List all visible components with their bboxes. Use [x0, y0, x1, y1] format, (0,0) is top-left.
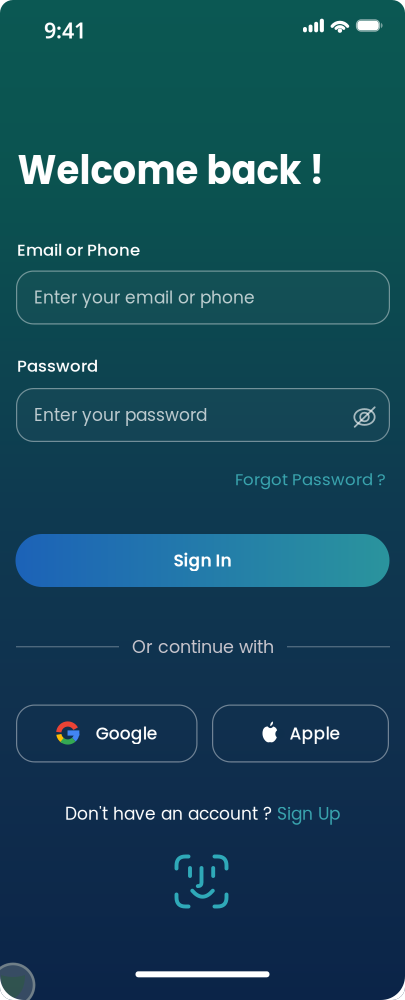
button[interactable]: Show password [352, 404, 376, 428]
button[interactable]: Sign Up [277, 802, 340, 826]
staticText: Or continue with [132, 634, 274, 659]
button[interactable]: Forgot Password ? [235, 468, 386, 491]
staticText: Email or Phone [17, 238, 140, 262]
button[interactable]: Apple [212, 704, 389, 762]
staticText: Sign In [173, 549, 231, 572]
button[interactable]: Sign In [15, 534, 389, 587]
button[interactable]: Enter your password [16, 388, 390, 442]
button[interactable]: Sign in with Face ID [174, 854, 228, 908]
staticText: Sign Up [277, 802, 340, 826]
staticText: Enter your email or phone [34, 286, 255, 309]
staticText: Google [96, 722, 157, 745]
staticText: Apple [289, 722, 339, 745]
staticText: 9:41 [44, 15, 86, 45]
button[interactable]: Enter your email or phone [16, 270, 390, 324]
staticText: Don't have an account ? [65, 802, 277, 826]
button[interactable]: Google [16, 704, 197, 762]
staticText: Welcome back ! [17, 142, 324, 194]
staticText: Password [17, 354, 98, 378]
staticText: Forgot Password ? [235, 468, 386, 491]
staticText: Enter your password [34, 403, 207, 427]
